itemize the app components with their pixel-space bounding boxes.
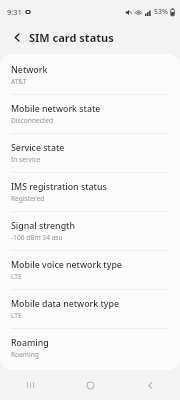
staticText: LTE: [11, 311, 22, 320]
staticText: AT&T: [11, 77, 27, 86]
button[interactable]: Back: [120, 370, 180, 400]
staticText: -106 dBm 34 asu: [11, 233, 63, 242]
staticText: Mobile voice network type: [11, 259, 122, 271]
staticText: In service: [11, 155, 41, 164]
button[interactable]: Home: [60, 370, 120, 400]
staticText: Network: [11, 64, 48, 76]
button[interactable]: Recent apps: [0, 370, 60, 400]
staticText: LTE: [11, 272, 22, 281]
button[interactable]: Signal strength: [0, 212, 180, 250]
staticText: IMS registration status: [11, 181, 107, 193]
staticText: Disconnected: [11, 116, 54, 125]
staticText: SIM card status: [29, 30, 114, 45]
button[interactable]: Service state: [0, 134, 180, 172]
button[interactable]: Network: [0, 54, 180, 94]
button[interactable]: Mobile network state: [0, 95, 180, 133]
staticText: Service state: [11, 142, 65, 154]
staticText: Roaming: [11, 337, 49, 349]
staticText: Mobile network state: [11, 103, 101, 115]
button[interactable]: Back: [8, 28, 26, 46]
staticText: Mobile data network type: [11, 298, 120, 310]
staticText: Roaming: [11, 350, 39, 359]
staticText: Signal strength: [11, 220, 75, 232]
button[interactable]: Roaming: [0, 329, 180, 370]
staticText: Registered: [11, 194, 45, 203]
button[interactable]: Mobile data network type: [0, 290, 180, 328]
staticText: 9:31: [7, 7, 22, 17]
staticText: 53%: [154, 7, 168, 17]
button[interactable]: Mobile voice network type: [0, 251, 180, 289]
button[interactable]: IMS registration status: [0, 173, 180, 211]
